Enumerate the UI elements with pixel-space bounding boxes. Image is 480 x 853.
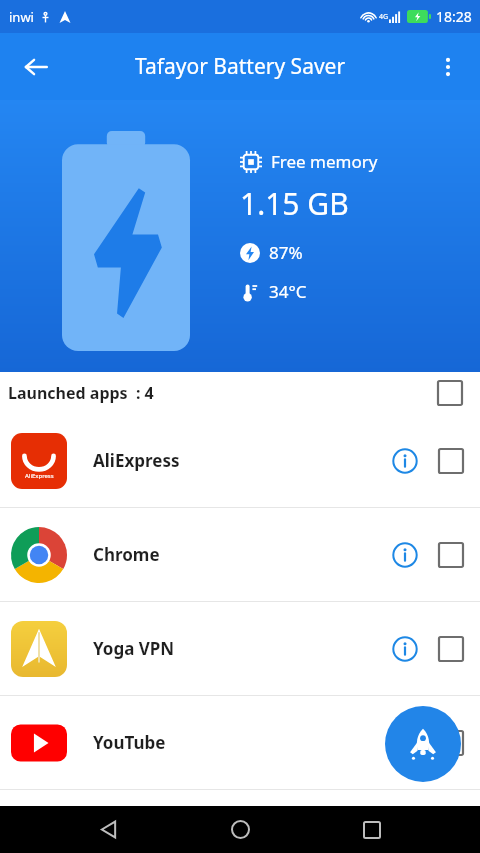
button[interactable]: AliExpress — [0, 414, 480, 508]
button[interactable]: YouTube — [0, 696, 480, 790]
staticText: Tafayor Battery Saver — [135, 52, 346, 81]
button[interactable]: Chrome — [0, 508, 480, 602]
button[interactable]: Home — [216, 806, 264, 853]
staticText: 18:28 — [436, 7, 472, 26]
staticText: AliExpress — [25, 472, 54, 480]
button[interactable]: Select AliExpress — [431, 441, 471, 481]
staticText: 4G — [379, 12, 389, 22]
button[interactable]: Select YouTube — [431, 723, 471, 763]
staticText: YouTube — [93, 731, 383, 754]
staticText: 34°C — [269, 280, 307, 303]
button[interactable]: Launched apps : 4 — [0, 372, 480, 414]
button[interactable]: App info — [383, 439, 427, 483]
button[interactable]: App info — [383, 533, 427, 577]
button[interactable]: Recent apps — [348, 806, 396, 853]
button[interactable]: App info — [383, 721, 427, 765]
staticText: Free memory — [271, 150, 378, 173]
button[interactable]: Yoga VPN — [0, 602, 480, 696]
staticText: Chrome — [93, 543, 383, 566]
button[interactable]: Select Yoga VPN — [431, 629, 471, 669]
button[interactable]: Back — [84, 806, 132, 853]
staticText: AliExpress — [93, 449, 383, 472]
staticText: 1.15 GB — [240, 183, 349, 224]
staticText: 87% — [269, 241, 303, 264]
staticText: Launched apps : 4 — [8, 382, 154, 404]
button[interactable]: Select Chrome — [431, 535, 471, 575]
staticText: inwi — [9, 8, 34, 26]
button[interactable]: More options — [426, 45, 470, 89]
button[interactable]: App info — [383, 627, 427, 671]
button[interactable]: Back — [14, 45, 58, 89]
staticText: Yoga VPN — [93, 637, 383, 660]
button[interactable]: Boost — [385, 706, 461, 782]
